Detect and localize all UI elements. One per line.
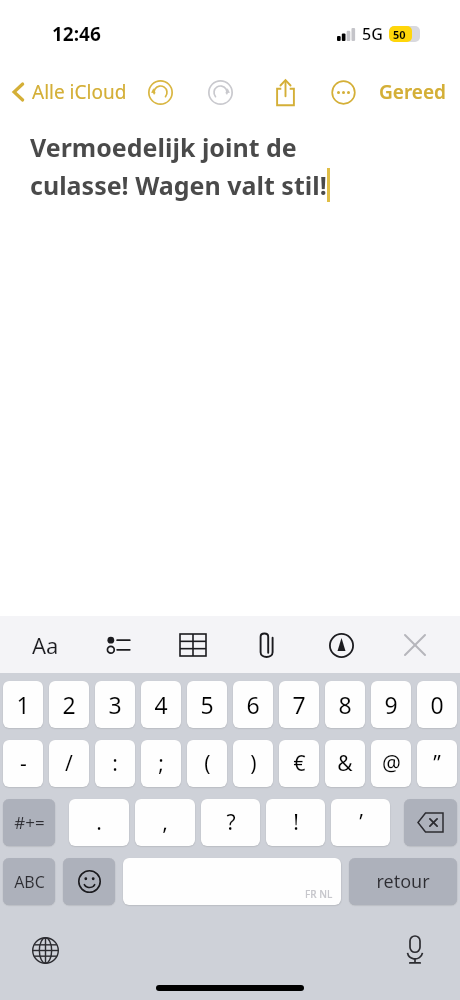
- staticText: Vermoedelijk joint de culasse! Wagen val…: [30, 130, 327, 202]
- button[interactable]: 3: [95, 681, 135, 728]
- staticText: 50: [393, 27, 406, 42]
- button[interactable]: :: [95, 740, 135, 787]
- button[interactable]: Attach: [244, 622, 290, 668]
- staticText: /: [65, 749, 73, 778]
- button[interactable]: ABC: [3, 858, 55, 905]
- button[interactable]: 4: [141, 681, 181, 728]
- staticText: Alle iCloud: [32, 79, 127, 105]
- staticText: 1: [16, 689, 30, 720]
- button[interactable]: 6: [233, 681, 273, 728]
- staticText: 7: [292, 689, 306, 720]
- button[interactable]: 1: [3, 681, 43, 728]
- button[interactable]: Markup: [318, 622, 364, 668]
- staticText: 12:46: [52, 21, 101, 47]
- staticText: 5G: [362, 23, 383, 45]
- staticText: 8: [338, 689, 352, 720]
- button[interactable]: @: [371, 740, 411, 787]
- staticText: 0: [430, 689, 444, 720]
- staticText: (: [204, 749, 211, 778]
- button[interactable]: ): [233, 740, 273, 787]
- button[interactable]: €: [279, 740, 319, 787]
- button[interactable]: (: [187, 740, 227, 787]
- button[interactable]: 8: [325, 681, 365, 728]
- button[interactable]: Checklist: [96, 622, 142, 668]
- button[interactable]: ’: [331, 799, 390, 846]
- staticText: ?: [226, 808, 236, 837]
- button[interactable]: Share: [263, 70, 307, 114]
- staticText: FR NL: [305, 887, 333, 901]
- button[interactable]: Alle iCloud: [10, 73, 129, 111]
- button[interactable]: Text format: [22, 622, 68, 668]
- button[interactable]: Backspace: [404, 799, 457, 846]
- button[interactable]: ;: [141, 740, 181, 787]
- button[interactable]: Close keyboard: [392, 622, 438, 668]
- staticText: ): [250, 749, 257, 778]
- button[interactable]: ,: [135, 799, 195, 846]
- staticText: .: [96, 808, 102, 837]
- button[interactable]: 9: [371, 681, 411, 728]
- staticText: &: [337, 749, 353, 778]
- staticText: 9: [384, 689, 398, 720]
- button[interactable]: ”: [417, 740, 457, 787]
- staticText: €: [293, 749, 306, 778]
- staticText: !: [293, 808, 299, 837]
- button[interactable]: &: [325, 740, 365, 787]
- button[interactable]: -: [3, 740, 43, 787]
- button[interactable]: Table: [170, 622, 216, 668]
- staticText: ’: [359, 808, 363, 837]
- staticText: retour: [376, 869, 430, 894]
- staticText: #+=: [14, 811, 45, 834]
- button[interactable]: ?: [201, 799, 260, 846]
- button[interactable]: 0: [417, 681, 457, 728]
- staticText: 2: [62, 689, 76, 720]
- staticText: ,: [162, 808, 168, 837]
- staticText: :: [112, 749, 118, 778]
- staticText: 6: [246, 689, 260, 720]
- button[interactable]: Undo: [143, 75, 177, 109]
- staticText: 4: [154, 689, 168, 720]
- button[interactable]: !: [266, 799, 325, 846]
- button[interactable]: Change keyboard: [22, 927, 68, 973]
- button[interactable]: 7: [279, 681, 319, 728]
- staticText: 5: [200, 689, 214, 720]
- staticText: 3: [108, 689, 122, 720]
- button[interactable]: Gereed: [375, 73, 450, 111]
- staticText: ”: [433, 749, 441, 778]
- staticText: Aa: [32, 630, 59, 660]
- button[interactable]: #+=: [3, 799, 55, 846]
- staticText: ;: [158, 749, 164, 778]
- button[interactable]: /: [49, 740, 89, 787]
- button[interactable]: Space: [123, 858, 341, 905]
- staticText: -: [20, 749, 27, 778]
- button[interactable]: .: [69, 799, 129, 846]
- button[interactable]: Emoji: [63, 858, 115, 905]
- button[interactable]: retour: [349, 858, 457, 905]
- button[interactable]: More options: [321, 70, 365, 114]
- button[interactable]: 5: [187, 681, 227, 728]
- button[interactable]: Dictation: [392, 927, 438, 973]
- staticText: Gereed: [379, 79, 446, 105]
- button[interactable]: 2: [49, 681, 89, 728]
- staticText: ABC: [14, 871, 45, 893]
- button[interactable]: Redo: [203, 75, 237, 109]
- staticText: @: [382, 749, 401, 778]
